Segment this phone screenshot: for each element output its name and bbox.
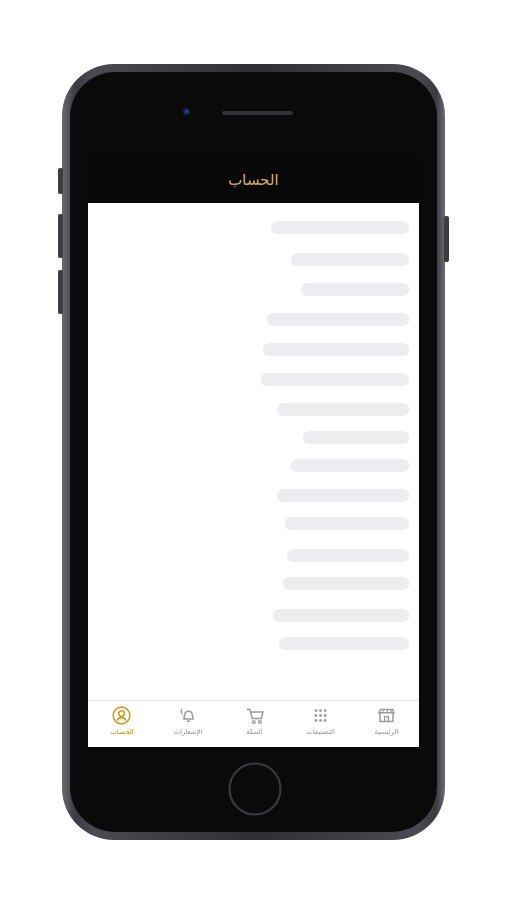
- button[interactable]: الحساب: [88, 701, 155, 747]
- button[interactable]: السلة: [221, 701, 287, 747]
- staticText: الإشعارات: [173, 728, 203, 736]
- staticText: التصنيفات: [306, 728, 335, 736]
- staticText: السلة: [246, 728, 263, 736]
- staticText: الحساب: [110, 728, 134, 736]
- button[interactable]: الإشعارات: [155, 701, 221, 747]
- button[interactable]: الرئيسية: [353, 701, 419, 747]
- button[interactable]: التصنيفات: [287, 701, 353, 747]
- staticText: الحساب: [228, 171, 279, 188]
- staticText: الرئيسية: [374, 728, 399, 736]
